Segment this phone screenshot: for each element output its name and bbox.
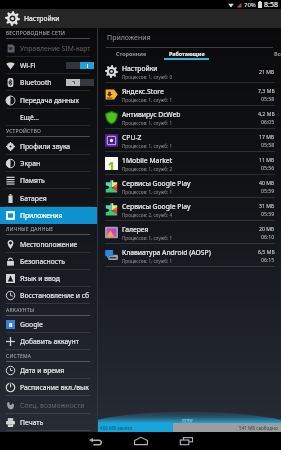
button[interactable]: Восстановление и сб — [0, 287, 97, 304]
staticText: Сервисы Google Play — [122, 202, 191, 211]
button[interactable]: Ещё… — [0, 109, 97, 126]
button[interactable]: Профили звука — [0, 137, 97, 155]
staticText: 21 МБ — [259, 68, 275, 75]
button[interactable]: Приложения — [0, 207, 97, 224]
staticText: Приложения — [20, 211, 63, 220]
staticText: 6,5 МБ — [258, 248, 275, 255]
staticText: Процессов: 1, служб: 1 — [122, 120, 173, 126]
button[interactable]: Спец. возможности — [0, 396, 97, 414]
button[interactable]: 1 — [98, 152, 281, 175]
staticText: 406 МБ занято — [100, 425, 133, 431]
button[interactable]: Антивирус Dr.Web — [98, 106, 281, 129]
staticText: Яндекс.Store — [122, 87, 164, 96]
staticText: Добавить аккаунт — [20, 337, 79, 346]
staticText: Процессов: 1, служб: 1 — [122, 258, 173, 264]
staticText: 40 МБ — [259, 179, 275, 186]
button[interactable]: Клавиатура Android (AOSP) — [98, 244, 281, 267]
staticText: 7,3 МБ — [258, 87, 275, 94]
staticText: Язык и ввод — [20, 274, 60, 283]
staticText: CPU-Z — [122, 133, 142, 142]
staticText: 05:58 — [261, 141, 275, 148]
staticText: 20 МБ — [259, 225, 275, 232]
button[interactable]: Печать — [0, 414, 97, 431]
button[interactable]: Wi-Fi — [0, 57, 97, 74]
staticText: 06:15 — [261, 256, 275, 263]
button[interactable]: Все — [259, 48, 281, 60]
staticText: Процессов: 1, служб: 1 — [122, 143, 173, 149]
staticText: АККАУНТЫ — [6, 307, 35, 314]
staticText: Bluetooth — [20, 78, 52, 87]
staticText: 06:10 — [261, 233, 275, 240]
button[interactable]: Расписание вкл./вык — [0, 379, 97, 396]
button[interactable]: Сторонние — [108, 48, 155, 60]
staticText: Ещё… — [20, 113, 39, 122]
staticText: 05:59 — [261, 187, 275, 194]
button[interactable]: Сервисы Google Play — [98, 175, 281, 198]
staticText: Батарея — [20, 194, 47, 203]
staticText: ЛИЧНЫЕ ДАННЫЕ — [6, 226, 54, 233]
button[interactable]: Батарея — [0, 189, 97, 207]
staticText: 4,2 МБ — [258, 110, 275, 117]
staticText: Процессов: 1, служб: 2 — [122, 166, 173, 172]
button[interactable]: Recent apps — [174, 432, 198, 450]
staticText: 05:59 — [261, 210, 275, 217]
button[interactable]: Язык и ввод — [0, 270, 97, 287]
staticText: Работающие — [169, 50, 205, 57]
staticText: 1 — [108, 158, 115, 171]
staticText: Настройки — [122, 64, 158, 73]
button[interactable]: Настройки — [0, 9, 281, 28]
staticText: Процессов: 2, служб: 4 — [122, 212, 173, 218]
button[interactable]: Home — [129, 432, 153, 450]
button[interactable]: Дата и время — [0, 362, 97, 379]
staticText: Память — [20, 176, 45, 185]
staticText: 541 МБ свободно — [239, 425, 278, 431]
staticText: БЕСПРОВОДНЫЕ СЕТИ — [6, 30, 66, 37]
staticText: Процессов: 1, служб: 1 — [122, 189, 173, 195]
staticText: Передача данных — [20, 96, 79, 105]
staticText: Все — [274, 50, 281, 57]
button[interactable]: Передача данных — [0, 91, 97, 109]
staticText: 05:56 — [261, 164, 275, 171]
staticText: Экран — [20, 159, 41, 168]
staticText: Google — [20, 320, 43, 329]
button[interactable]: Яндекс.Store — [98, 83, 281, 106]
staticText: 31 МБ — [259, 202, 275, 209]
staticText: Wi-Fi — [20, 61, 36, 70]
staticText: Приложения — [107, 33, 151, 43]
staticText: 1Mobile Market — [122, 156, 173, 165]
staticText: Восстановление и сб — [20, 291, 90, 300]
staticText: Галерея — [122, 225, 149, 234]
button[interactable]: Местоположение — [0, 235, 97, 253]
staticText: Управление SIM-карт — [20, 44, 91, 53]
button[interactable]: Работающие — [164, 48, 209, 60]
staticText: 8:58 — [264, 0, 278, 9]
staticText: 8 — [9, 321, 13, 329]
staticText: Антивирус Dr.Web — [122, 110, 181, 119]
staticText: 05:58 — [261, 95, 275, 102]
staticText: Профили звука — [20, 142, 71, 151]
staticText: 17 МБ — [259, 133, 275, 140]
button[interactable]: Память — [0, 172, 97, 189]
button[interactable]: Bluetooth — [0, 74, 97, 91]
button[interactable]: CPU-Z — [98, 129, 281, 152]
staticText: Сервисы Google Play — [122, 179, 191, 188]
staticText: Безопасность — [20, 257, 65, 266]
staticText: Местоположение — [20, 240, 78, 249]
staticText: Печать — [20, 418, 44, 427]
staticText: Процессов: 1, служб: 0 — [122, 74, 173, 80]
button[interactable]: Сервисы Google Play — [98, 198, 281, 221]
button[interactable]: Галерея — [98, 221, 281, 244]
staticText: УСТРОЙСТВО — [6, 128, 42, 135]
button[interactable]: Back — [83, 432, 108, 450]
button[interactable]: Управление SIM-карт — [0, 39, 97, 57]
button[interactable]: Добавить аккаунт — [0, 333, 97, 350]
staticText: Процессов: 1, служб: 1 — [122, 97, 173, 103]
staticText: СИСТЕМА — [6, 353, 32, 360]
staticText: ОЗУ — [182, 417, 193, 424]
staticText: 11 МБ — [259, 156, 275, 163]
button[interactable]: Настройки — [98, 60, 281, 83]
button[interactable]: 8 — [0, 316, 97, 333]
button[interactable]: Экран — [0, 155, 97, 172]
staticText: Настройки — [24, 14, 60, 23]
button[interactable]: Безопасность — [0, 253, 97, 270]
